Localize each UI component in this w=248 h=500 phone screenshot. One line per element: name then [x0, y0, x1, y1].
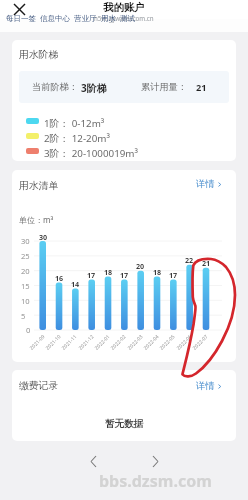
staticText: 2022-01 — [93, 333, 112, 352]
staticText: 单位：m³ — [19, 214, 54, 225]
staticText: h5vt.gywater.com.cn — [94, 14, 154, 22]
staticText: 30 — [21, 236, 30, 246]
staticText: 21 — [196, 81, 207, 94]
staticText: 用水清单 — [19, 180, 59, 192]
staticText: 缴费记录 — [19, 380, 59, 392]
staticText: 详情 — [196, 380, 215, 392]
staticText: 30 — [39, 232, 48, 242]
staticText: 2021-11 — [60, 333, 79, 352]
staticText: 2021-09 — [28, 333, 47, 352]
staticText: 3阶： 20-1000019m³ — [44, 147, 138, 160]
staticText: 10 — [21, 296, 30, 306]
staticText: 25 — [21, 251, 30, 261]
staticText: 2022-06 — [175, 333, 194, 352]
staticText: bbs.dzsm.com — [99, 470, 212, 492]
staticText: 5 — [21, 311, 26, 321]
staticText: 用水阶梯 — [19, 49, 59, 61]
staticText: 当前阶梯： — [32, 81, 78, 93]
button[interactable]: Forward — [146, 452, 164, 470]
staticText: 20 — [136, 261, 145, 271]
staticText: 每日一签 — [6, 14, 36, 22]
staticText: 2022-05 — [158, 333, 177, 352]
staticText: 测试 — [120, 14, 135, 22]
staticText: 14 — [71, 279, 80, 289]
staticText: 16 — [55, 273, 64, 283]
staticText: 0 — [26, 325, 31, 335]
staticText: 18 — [104, 267, 113, 277]
staticText: 2022-04 — [142, 333, 161, 352]
staticText: 17 — [169, 270, 178, 280]
staticText: 用水 — [101, 14, 116, 22]
staticText: 20 — [21, 266, 30, 276]
staticText: 3阶梯 — [81, 81, 107, 95]
staticText: 累计用量： — [141, 81, 187, 93]
staticText: 2022-03 — [126, 333, 145, 352]
button[interactable]: 详情 — [196, 178, 222, 190]
button[interactable]: 详情 — [196, 380, 222, 392]
staticText: 信息中心 — [40, 14, 70, 22]
staticText: 22 — [185, 255, 194, 265]
staticText: 暂无数据 — [105, 418, 144, 430]
staticText: 营业厅 — [74, 14, 97, 22]
staticText: 2021-12 — [77, 333, 96, 352]
staticText: 17 — [120, 270, 129, 280]
staticText: 详情 — [196, 178, 215, 190]
button[interactable]: Close — [7, 0, 31, 21]
button[interactable]: Back — [84, 452, 102, 470]
staticText: 我的账户 — [103, 1, 145, 14]
staticText: 17 — [87, 270, 96, 280]
staticText: 18 — [153, 267, 162, 277]
staticText: 1阶： 0-12m³ — [44, 117, 105, 130]
staticText: 2022-07 — [191, 333, 210, 352]
staticText: 2022-02 — [109, 333, 128, 352]
staticText: 2021-10 — [44, 333, 63, 352]
staticText: 15 — [21, 281, 30, 291]
staticText: 2阶： 12-20m³ — [44, 132, 110, 145]
staticText: 21 — [202, 258, 211, 268]
